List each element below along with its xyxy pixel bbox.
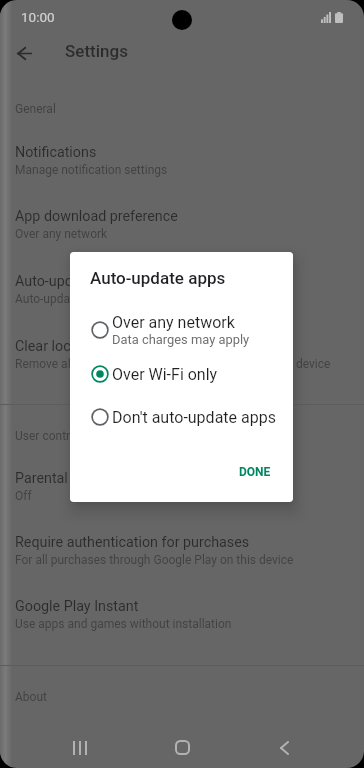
button[interactable]: Over Wi-Fi only (70, 352, 293, 396)
staticText: DONE (239, 465, 271, 479)
staticText: About (15, 690, 47, 704)
staticText: App download preference (15, 208, 178, 225)
staticText: Settings (65, 41, 128, 61)
staticText: Manage notification settings (15, 163, 168, 177)
staticText: Auto-update apps (15, 273, 128, 290)
button[interactable]: Navigate up (7, 36, 41, 70)
button[interactable]: Parental controls (0, 459, 364, 501)
staticText: General (15, 102, 56, 116)
staticText: For all purchases through Google Play on… (15, 553, 294, 567)
button[interactable]: Home (159, 727, 205, 768)
button[interactable]: Clear local search history (0, 327, 364, 369)
staticText: Auto-update apps over Wi-Fi only (15, 292, 190, 306)
staticText: 10:00 (21, 9, 55, 25)
staticText: Over any network (15, 227, 108, 241)
staticText: Remove all the searches you have perform… (15, 357, 331, 371)
staticText: Over Wi-Fi only (112, 365, 218, 384)
button[interactable]: Don't auto-update apps (70, 395, 293, 439)
button[interactable]: Over any network (70, 308, 293, 352)
staticText: Parental controls (15, 470, 124, 487)
button[interactable]: Google Play Instant (0, 587, 364, 629)
staticText: Off (15, 489, 32, 503)
button[interactable]: Require authentication for purchases (0, 523, 364, 565)
staticText: Over any network (112, 313, 235, 332)
button[interactable]: DONE (228, 455, 282, 489)
button[interactable]: Auto-update apps (0, 262, 364, 304)
staticText: Notifications (15, 144, 97, 161)
staticText: Use apps and games without installation (15, 617, 232, 631)
button[interactable]: App download preference (0, 197, 364, 239)
button[interactable]: Recent apps (57, 727, 103, 768)
staticText: Don't auto-update apps (112, 408, 276, 427)
staticText: Google Play Instant (15, 598, 139, 615)
staticText: Clear local search history (15, 338, 175, 355)
staticText: Auto-update apps (90, 268, 226, 288)
staticText: Require authentication for purchases (15, 534, 250, 551)
button[interactable]: Back (261, 727, 307, 768)
staticText: Data charges may apply (112, 332, 250, 347)
staticText: User controls (15, 429, 86, 443)
button[interactable]: Notifications (0, 133, 364, 175)
